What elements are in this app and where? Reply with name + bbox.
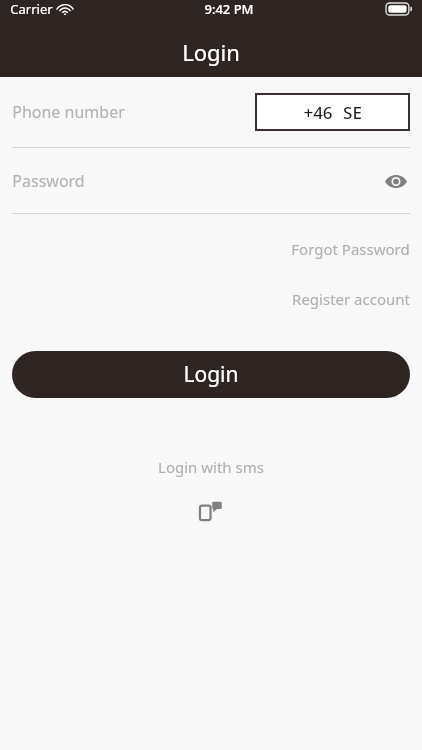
button[interactable]: Show password <box>378 163 414 199</box>
button[interactable]: Login with sms <box>0 457 422 524</box>
staticText: Phone number <box>12 101 125 123</box>
button[interactable]: Login <box>12 351 410 398</box>
staticText: Login <box>183 360 239 389</box>
button[interactable]: Forgot Password <box>279 236 422 262</box>
staticText: Password <box>12 170 85 192</box>
button[interactable]: Password <box>0 148 422 213</box>
button[interactable]: +46 <box>255 93 410 131</box>
staticText: Login with sms <box>158 457 264 477</box>
staticText: Login <box>182 37 240 67</box>
staticText: +46 <box>303 101 333 124</box>
other: Login with sms <box>197 496 225 524</box>
staticText: 9:42 PM <box>204 0 254 18</box>
button[interactable]: Register account <box>280 286 422 312</box>
staticText: SE <box>343 101 362 124</box>
staticText: Carrier <box>10 0 53 18</box>
